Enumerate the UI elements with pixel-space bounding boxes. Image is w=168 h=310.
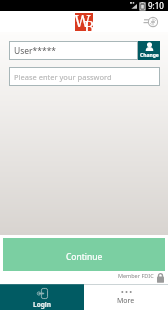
button[interactable]: More — [84, 284, 168, 310]
staticText: Member FDIC — [118, 272, 154, 279]
button[interactable]: User***** — [9, 41, 138, 60]
staticText: User***** — [14, 45, 57, 57]
staticText: Login — [33, 300, 51, 309]
staticText: Please enter your password — [14, 72, 112, 82]
staticText: More — [117, 296, 135, 306]
staticText: W — [74, 10, 91, 28]
staticText: 9:10 — [148, 0, 164, 11]
button[interactable]: Login — [0, 284, 84, 310]
button[interactable]: Please enter your password — [9, 67, 160, 86]
button[interactable]: Continue — [3, 238, 165, 271]
button[interactable]: Rates — [142, 12, 164, 32]
staticText: Change — [140, 52, 159, 59]
button[interactable]: Change — [138, 41, 160, 60]
staticText: B — [84, 16, 95, 34]
staticText: Continue — [66, 251, 103, 263]
